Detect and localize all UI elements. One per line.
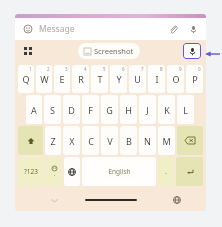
- staticText: B: [126, 135, 132, 147]
- staticText: M: [162, 135, 171, 147]
- button[interactable]: ?123: [18, 157, 44, 186]
- staticText: English: [108, 167, 131, 176]
- button[interactable]: F: [82, 95, 99, 124]
- button[interactable]: G: [101, 95, 118, 124]
- button[interactable]: Screenshot: [78, 43, 140, 59]
- button[interactable]: O: [167, 65, 184, 93]
- staticText: A: [31, 104, 37, 116]
- button[interactable]: Voice input: [186, 22, 200, 36]
- staticText: N: [144, 135, 151, 147]
- staticText: X: [69, 135, 75, 147]
- staticText: 1: [29, 66, 32, 72]
- staticText: 0: [198, 66, 201, 72]
- button[interactable]: Q: [18, 65, 34, 93]
- button[interactable]: E: [54, 65, 70, 93]
- button[interactable]: S: [44, 95, 61, 124]
- staticText: ?123: [24, 167, 38, 176]
- staticText: E: [59, 73, 65, 85]
- button[interactable]: M: [158, 126, 175, 155]
- button[interactable]: X: [63, 126, 80, 155]
- button[interactable]: B: [120, 126, 137, 155]
- staticText: Z: [50, 135, 56, 147]
- button[interactable]: P: [186, 65, 203, 93]
- button[interactable]: I: [148, 65, 165, 93]
- button[interactable]: Apps: [20, 43, 36, 59]
- button[interactable]: H: [120, 95, 137, 124]
- staticText: Screenshot: [94, 46, 134, 56]
- staticText: 8: [160, 66, 163, 72]
- staticText: L: [183, 104, 188, 116]
- staticText: 9: [179, 66, 182, 72]
- button[interactable]: Voice typing: [183, 43, 201, 59]
- staticText: R: [78, 73, 84, 85]
- button[interactable]: English: [82, 157, 156, 186]
- staticText: P: [192, 73, 198, 85]
- staticText: D: [68, 104, 75, 116]
- staticText: Q: [22, 73, 30, 85]
- button[interactable]: [177, 126, 203, 155]
- button[interactable]: Hide keyboard: [47, 193, 61, 207]
- staticText: U: [134, 73, 141, 85]
- staticText: Message: [39, 23, 166, 35]
- staticText: H: [125, 104, 132, 116]
- button[interactable]: J: [139, 95, 156, 124]
- button[interactable]: T: [91, 65, 108, 93]
- button[interactable]: D: [63, 95, 80, 124]
- staticText: ,: [54, 171, 56, 178]
- staticText: V: [107, 135, 113, 147]
- staticText: F: [88, 104, 93, 116]
- button[interactable]: L: [177, 95, 194, 124]
- button[interactable]: [64, 157, 80, 186]
- staticText: S: [50, 104, 55, 116]
- staticText: I: [155, 73, 159, 85]
- staticText: C: [88, 135, 94, 147]
- staticText: 3: [65, 66, 68, 72]
- button[interactable]: N: [139, 126, 156, 155]
- button[interactable]: Change language: [170, 193, 184, 207]
- button[interactable]: Emoji: [21, 22, 35, 36]
- staticText: 6: [122, 66, 125, 72]
- staticText: G: [106, 104, 113, 116]
- button[interactable]: K: [158, 95, 175, 124]
- staticText: 7: [141, 66, 144, 72]
- button[interactable]: ,: [46, 157, 62, 186]
- staticText: 5: [103, 66, 106, 72]
- button[interactable]: Z: [45, 126, 61, 155]
- button[interactable]: V: [101, 126, 118, 155]
- button[interactable]: [176, 157, 203, 186]
- button[interactable]: [18, 126, 43, 155]
- button[interactable]: C: [82, 126, 99, 155]
- staticText: T: [97, 73, 103, 85]
- staticText: J: [146, 104, 149, 116]
- staticText: W: [40, 73, 49, 85]
- button[interactable]: W: [36, 65, 52, 93]
- button[interactable]: U: [129, 65, 146, 93]
- staticText: O: [172, 73, 180, 85]
- button[interactable]: .: [158, 157, 174, 186]
- button[interactable]: A: [26, 95, 42, 124]
- staticText: K: [164, 104, 170, 116]
- staticText: .: [165, 167, 167, 177]
- button[interactable]: Y: [110, 65, 127, 93]
- staticText: 4: [84, 66, 87, 72]
- button[interactable]: Attach: [166, 22, 180, 36]
- staticText: Y: [116, 73, 122, 85]
- staticText: 2: [47, 66, 50, 72]
- button[interactable]: R: [72, 65, 89, 93]
